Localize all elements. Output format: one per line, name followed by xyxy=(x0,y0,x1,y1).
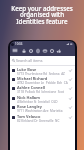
staticText: 4 Beltridge St, Innisfail, QLD xyxy=(17,100,58,103)
button[interactable]: Nick Hallam xyxy=(12,94,72,103)
staticText: 9711 Washington Ave, Marietta, OH xyxy=(17,109,68,112)
button[interactable]: Tool0 xyxy=(21,48,27,54)
staticText: Michael Richard xyxy=(17,76,48,81)
button[interactable]: Michael Richard xyxy=(12,75,72,84)
button[interactable]: Tool1 xyxy=(28,48,34,54)
button[interactable]: Tool3 xyxy=(42,48,48,54)
staticText: 10:04 xyxy=(15,42,23,46)
button[interactable]: Search all items xyxy=(12,56,73,65)
button[interactable]: Ashlee Connell xyxy=(12,84,72,93)
staticText: Search all items xyxy=(16,58,43,63)
staticText: 4782 Doveridge Ln, Pebble Bch, CA xyxy=(17,81,68,84)
staticText: 5773 Thurlestone Rd, Sedona, AZ xyxy=(17,72,65,75)
button[interactable]: Tool2 xyxy=(35,48,41,54)
staticText: 3118 Pollock Rd, Johnstone, Scot xyxy=(17,90,64,93)
staticText: 82 Kirkland Dr, Greenville, NC xyxy=(17,119,60,122)
staticText: Rose Langley xyxy=(17,104,42,109)
staticText: Keep your addresses organised with Ident… xyxy=(6,4,78,26)
button[interactable]: Tool5 xyxy=(56,48,62,54)
staticText: Nick Hallam xyxy=(17,95,40,100)
staticText: Luke Bose xyxy=(17,67,37,72)
button[interactable]: Tom Velasco xyxy=(12,113,72,122)
staticText: Ashlee Connell xyxy=(17,85,46,90)
staticText: Tom Velasco xyxy=(17,114,41,119)
button[interactable]: Luke Bose xyxy=(12,66,72,75)
button[interactable]: Menu xyxy=(11,47,18,54)
button[interactable]: Tool4 xyxy=(49,48,55,54)
button[interactable]: Rose Langley xyxy=(12,103,72,112)
